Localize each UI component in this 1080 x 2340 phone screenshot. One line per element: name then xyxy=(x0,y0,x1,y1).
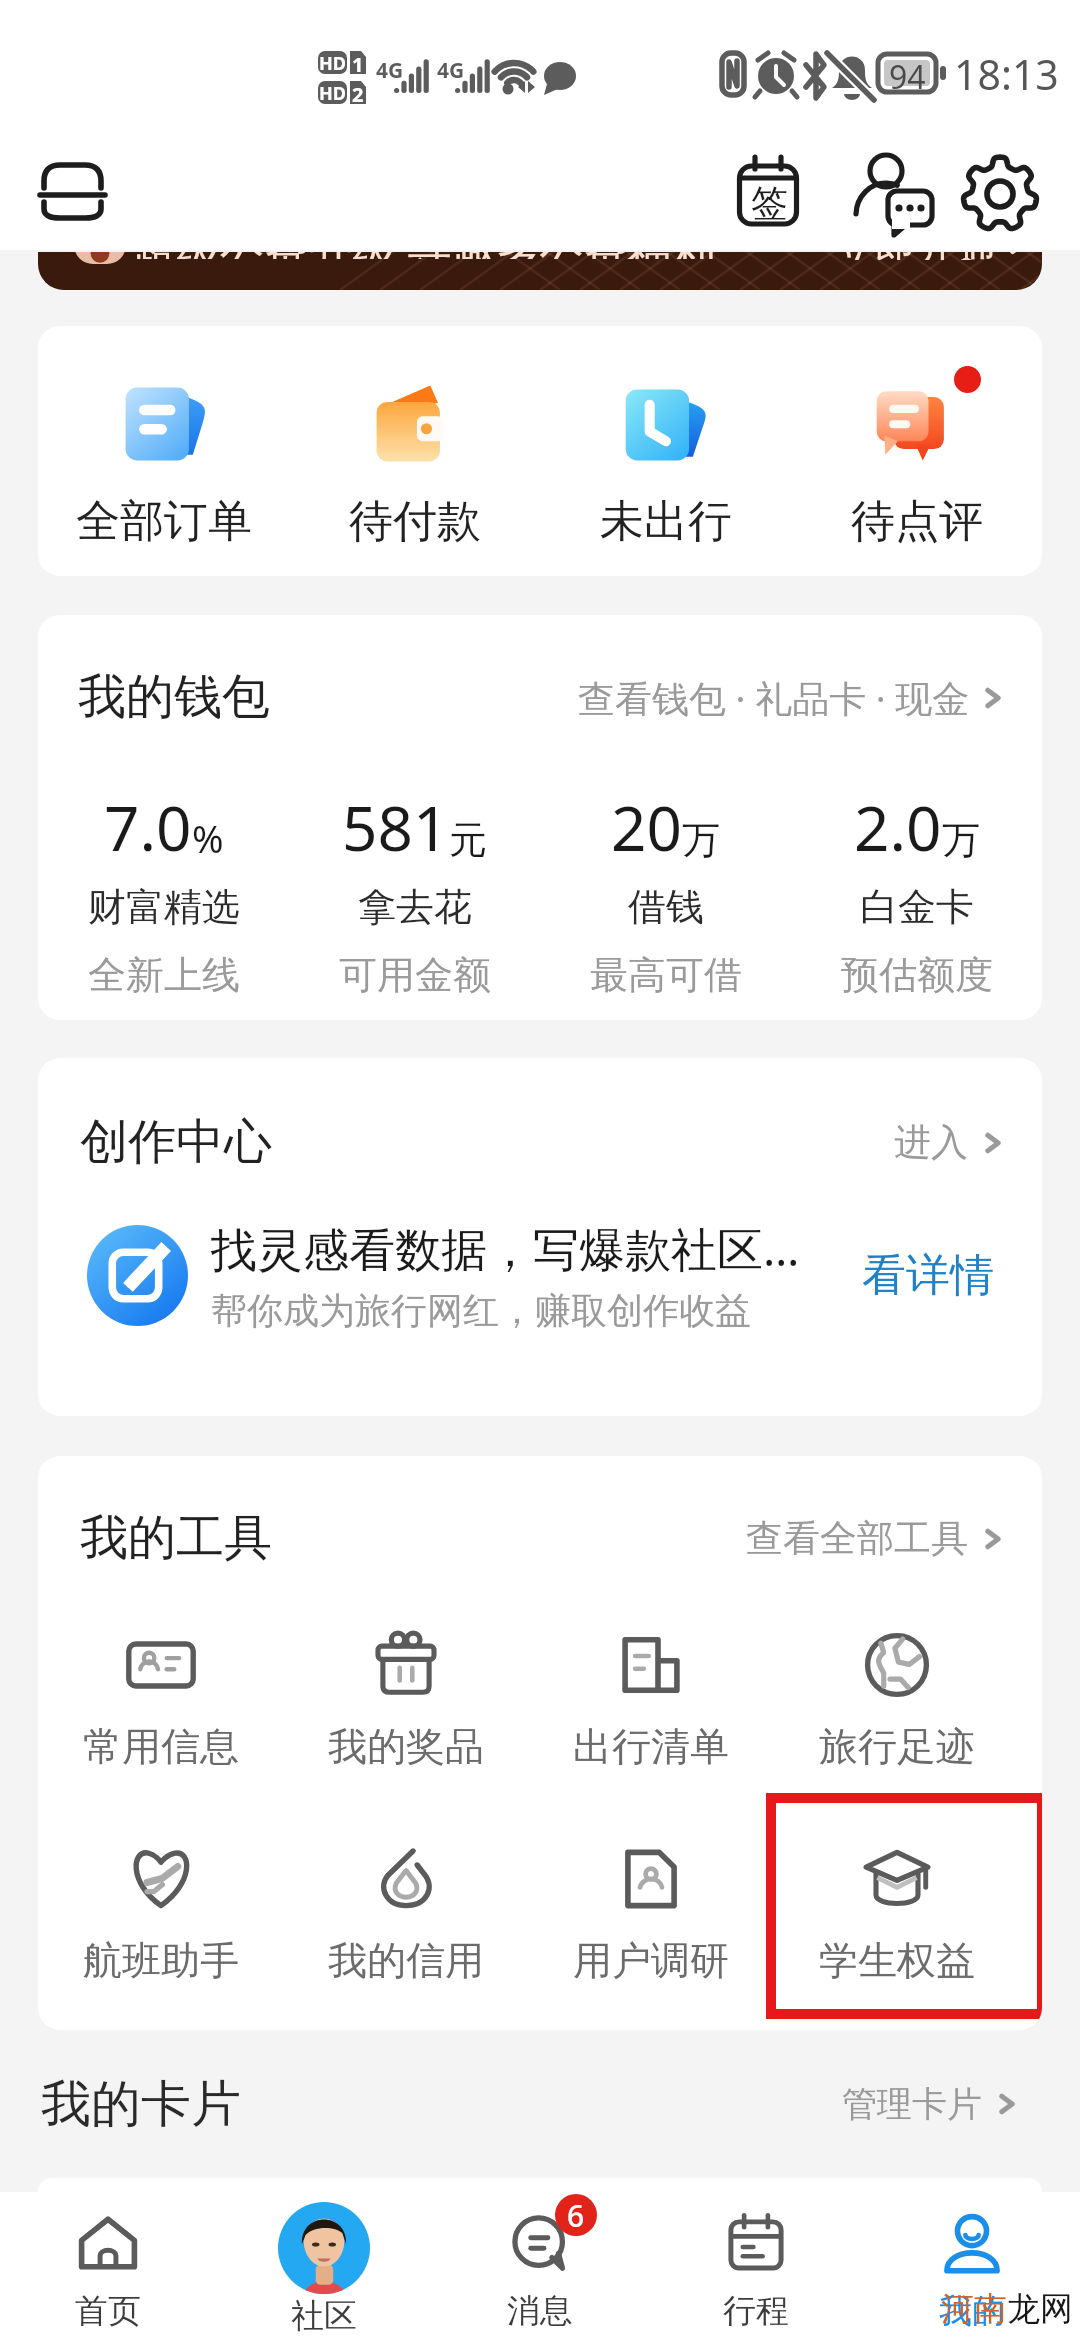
staticText: 我的钱包 xyxy=(78,667,270,727)
button[interactable]: 行程 xyxy=(648,2192,864,2340)
button[interactable]: 查看钱包 · 礼品卡 · 现金 xyxy=(578,672,1006,723)
button[interactable]: 旅行足迹 xyxy=(774,1598,1020,1812)
button[interactable]: Split screen xyxy=(38,158,108,224)
button[interactable]: 超级公费升级 寻趣多公费福利 xyxy=(38,252,1042,290)
staticText: 河南 xyxy=(941,2288,1007,2330)
button[interactable]: 待点评 xyxy=(791,326,1042,576)
staticText: 航班助手 xyxy=(83,1936,239,1985)
button[interactable]: 我的信用 xyxy=(283,1812,528,2026)
staticText: 未出行 xyxy=(600,494,732,549)
button[interactable]: 学生权益 xyxy=(774,1812,1020,2026)
button[interactable]: 管理卡片 xyxy=(842,2082,1020,2126)
button[interactable]: 进入 xyxy=(894,1119,1006,1166)
button[interactable]: 航班助手 xyxy=(38,1812,283,2026)
staticText: 6 xyxy=(567,2195,585,2236)
staticText: 社区 xyxy=(291,2295,357,2337)
staticText: 最高可借 xyxy=(590,951,742,999)
button[interactable]: 看详情 xyxy=(862,1248,994,1303)
staticText: 进入 xyxy=(894,1119,968,1166)
staticText: 拿去花 xyxy=(358,883,472,931)
button[interactable]: 社区 xyxy=(216,2192,432,2340)
staticText: 预估额度 xyxy=(841,951,993,999)
staticText: 借钱 xyxy=(628,883,704,931)
button[interactable]: Check in xyxy=(722,147,814,239)
staticText: 可用金额 xyxy=(339,951,491,999)
staticText: 管理卡片 xyxy=(842,2082,982,2126)
button[interactable]: 出行清单 xyxy=(528,1598,774,1812)
staticText: 首页 xyxy=(75,2290,141,2332)
button[interactable]: 7.0 xyxy=(38,785,289,999)
staticText: 待付款 xyxy=(349,494,481,549)
button[interactable]: 用户调研 xyxy=(528,1812,774,2026)
staticText: 全新上线 xyxy=(88,951,240,999)
button[interactable]: 找灵感看数据，写爆款社区… xyxy=(38,1217,1042,1333)
staticText: 签 xyxy=(751,180,788,227)
staticText: 全部订单 xyxy=(76,494,252,549)
staticText: HD xyxy=(319,81,346,103)
staticText: 学生权益 xyxy=(819,1936,975,1985)
staticText: 2.0 xyxy=(854,785,942,869)
staticText: 龙网 xyxy=(1007,2288,1073,2330)
staticText: 待点评 xyxy=(851,494,983,549)
staticText: 4G xyxy=(376,56,404,85)
staticText: HD xyxy=(319,51,346,73)
staticText: 94 xyxy=(889,55,926,91)
button[interactable]: 未出行 xyxy=(540,326,791,576)
button[interactable]: 查看全部工具 xyxy=(746,1515,1006,1562)
staticText: 帮你成为旅行网红，赚取创作收益 xyxy=(211,1288,751,1333)
staticText: 18:13 xyxy=(954,46,1059,102)
button[interactable]: 6 xyxy=(432,2192,648,2340)
staticText: % xyxy=(192,812,224,864)
staticText: 出行清单 xyxy=(573,1722,729,1771)
staticText: 常用信息 xyxy=(83,1722,239,1771)
button[interactable]: 2.0 xyxy=(791,785,1042,999)
staticText: 万 xyxy=(682,816,720,864)
staticText: 4G xyxy=(437,56,465,85)
staticText: 我的卡片 xyxy=(41,2073,241,2136)
staticText: 白金卡 xyxy=(860,883,974,931)
staticText: 元 xyxy=(449,816,487,864)
staticText: 旅行足迹 xyxy=(819,1722,975,1771)
staticText: 2 xyxy=(352,81,364,103)
staticText: 超级公费升级 寻趣多公费福利 xyxy=(132,252,716,259)
staticText: 我的 xyxy=(939,2290,1005,2332)
button[interactable]: 我的 xyxy=(864,2192,1080,2340)
staticText: 立即开通 xyxy=(834,252,998,260)
staticText: 1 xyxy=(352,51,364,73)
staticText: 查看全部工具 xyxy=(746,1515,968,1562)
staticText: 20 xyxy=(611,785,682,869)
button[interactable]: 首页 xyxy=(0,2192,216,2340)
button[interactable]: Settings xyxy=(958,152,1042,236)
staticText: 581 xyxy=(342,785,449,869)
button[interactable]: 常用信息 xyxy=(38,1598,283,1812)
button[interactable]: 全部订单 xyxy=(38,326,289,576)
button[interactable]: 581 xyxy=(289,785,540,999)
staticText: 我的信用 xyxy=(328,1936,484,1985)
staticText: 7.0 xyxy=(104,785,192,869)
staticText: 用户调研 xyxy=(573,1936,729,1985)
button[interactable]: 待付款 xyxy=(289,326,540,576)
staticText: 我的工具 xyxy=(80,1508,272,1568)
staticText: 万 xyxy=(942,816,980,864)
staticText: 财富精选 xyxy=(88,883,240,931)
staticText: 创作中心 xyxy=(80,1112,272,1172)
button[interactable]: 我的奖品 xyxy=(283,1598,528,1812)
staticText: 行程 xyxy=(723,2290,789,2332)
staticText: 查看钱包 · 礼品卡 · 现金 xyxy=(578,672,970,723)
button[interactable]: 20 xyxy=(540,785,791,999)
staticText: 找灵感看数据，写爆款社区… xyxy=(211,1217,800,1280)
staticText: 消息 xyxy=(507,2290,573,2332)
button[interactable]: Customer service xyxy=(846,147,940,241)
staticText: 我的奖品 xyxy=(328,1722,484,1771)
